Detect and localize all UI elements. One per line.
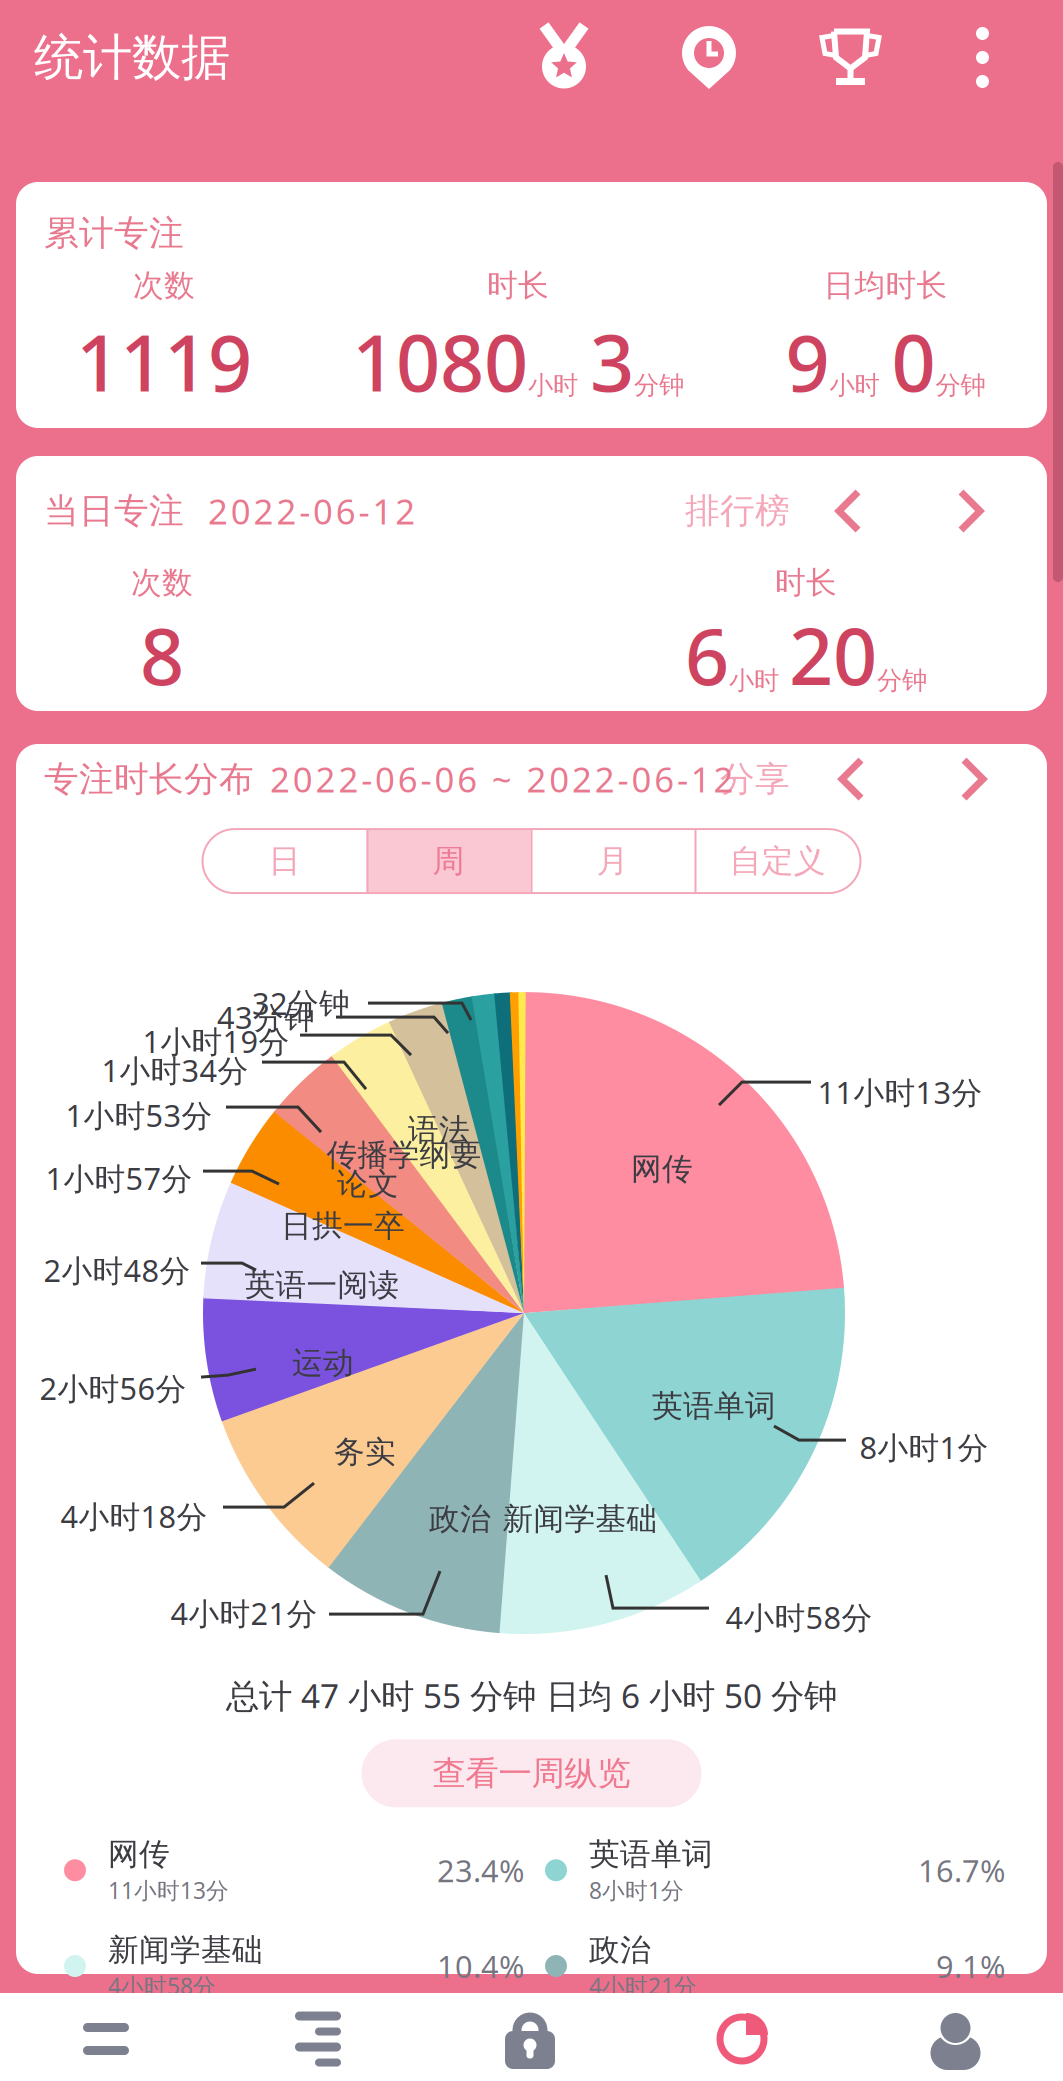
button[interactable]: 分享 <box>720 758 790 800</box>
staticText: 分钟 <box>877 665 927 696</box>
staticText: 2小时56分 <box>39 1368 186 1408</box>
staticText: 政治 <box>589 1931 651 1969</box>
button[interactable]: 日 <box>202 829 366 893</box>
button[interactable]: 自定义 <box>694 829 860 893</box>
staticText: 20 <box>789 603 877 706</box>
staticText: 传播学纲要 <box>326 1136 481 1174</box>
staticText: 分钟 <box>935 370 985 401</box>
staticText: 语法 <box>408 1111 470 1149</box>
staticText: 6 <box>685 603 729 706</box>
button[interactable]: 月 <box>530 829 694 893</box>
staticText: 11小时13分 <box>108 1875 229 1905</box>
button[interactable]: Timeline <box>0 1993 212 2081</box>
button[interactable]: 新闻学基础 <box>64 1931 524 2001</box>
staticText: 8小时1分 <box>859 1427 988 1467</box>
button[interactable]: Previous day <box>831 488 865 534</box>
button[interactable]: 网传 <box>64 1835 524 1905</box>
staticText: 8小时1分 <box>589 1875 684 1905</box>
staticText: 43分钟 <box>217 997 315 1037</box>
staticText: 2小时48分 <box>43 1250 190 1290</box>
button[interactable]: Achievements <box>537 25 591 89</box>
staticText: 3 <box>590 310 634 413</box>
staticText: 8 <box>140 603 184 706</box>
staticText: 0 <box>891 310 935 413</box>
staticText: 4小时21分 <box>589 1971 697 2001</box>
staticText: 9.1% <box>936 1946 1005 1986</box>
button[interactable]: Next week <box>956 756 990 802</box>
staticText: 小时 <box>528 370 578 401</box>
staticText: 论文 <box>337 1165 399 1203</box>
staticText: 1小时53分 <box>65 1095 212 1135</box>
staticText: 统计数据 <box>34 27 230 88</box>
button[interactable]: 政治 <box>545 1931 1005 2001</box>
button[interactable]: Profile <box>848 1993 1063 2081</box>
staticText: 小时 <box>729 665 779 696</box>
staticText: 次数 <box>131 564 193 602</box>
button[interactable]: Previous week <box>834 756 868 802</box>
staticText: 英语单词 <box>589 1835 713 1873</box>
staticText: 16.7% <box>918 1850 1005 1891</box>
button[interactable]: Leaderboard <box>819 27 882 87</box>
staticText: 1小时34分 <box>101 1050 248 1090</box>
staticText: 总计 47 小时 55 分钟 日均 6 小时 50 分钟 <box>226 1673 837 1717</box>
staticText: 专注时长分布 <box>44 758 254 800</box>
staticText: 4小时21分 <box>170 1593 317 1633</box>
staticText: 务实 <box>334 1433 396 1471</box>
staticText: 1080 <box>352 310 528 413</box>
staticText: 网传 <box>108 1835 170 1873</box>
button[interactable]: Next day <box>953 488 987 534</box>
staticText: 10.4% <box>437 1946 524 1986</box>
staticText: 小时 <box>829 370 879 401</box>
staticText: 2022-06-06 ~ 2022-06-12 <box>270 756 734 802</box>
staticText: 时长 <box>487 267 549 304</box>
staticText: 4小时58分 <box>108 1971 216 2001</box>
button[interactable]: Tasks <box>212 1993 424 2081</box>
staticText: 分钟 <box>634 370 684 401</box>
staticText: 1小时19分 <box>142 1021 289 1061</box>
staticText: 分享 <box>720 758 790 800</box>
button[interactable]: History <box>682 26 736 89</box>
staticText: 政治 <box>429 1500 491 1538</box>
button[interactable]: Focus lock <box>424 1993 636 2081</box>
button[interactable]: 排行榜 <box>685 490 790 532</box>
staticText: 新闻学基础 <box>108 1931 263 1969</box>
staticText: 日拱一卒 <box>281 1207 405 1245</box>
staticText: 当日专注 <box>44 490 184 532</box>
staticText: 自定义 <box>729 841 825 881</box>
staticText: 2022-06-12 <box>208 488 415 534</box>
staticText: 32分钟 <box>252 983 350 1023</box>
staticText: 次数 <box>133 267 195 304</box>
staticText: 查看一周纵览 <box>432 1753 630 1794</box>
staticText: 时长 <box>775 564 837 602</box>
staticText: 英语单词 <box>652 1387 776 1425</box>
staticText: 4小时18分 <box>60 1496 207 1536</box>
staticText: 周 <box>432 841 464 881</box>
staticText: 1119 <box>76 310 252 413</box>
button[interactable]: Statistics <box>636 1993 848 2081</box>
button[interactable]: 英语单词 <box>545 1835 1005 1905</box>
button[interactable]: More options <box>975 27 990 88</box>
staticText: 新闻学基础 <box>502 1500 657 1538</box>
staticText: 11小时13分 <box>817 1072 982 1112</box>
staticText: 网传 <box>631 1150 693 1188</box>
staticText: 英语一阅读 <box>244 1266 399 1304</box>
staticText: 日均时长 <box>823 267 947 304</box>
staticText: 9 <box>785 310 829 413</box>
staticText: 运动 <box>292 1344 354 1382</box>
staticText: 1小时57分 <box>45 1158 192 1198</box>
staticText: 23.4% <box>437 1850 524 1891</box>
staticText: 日 <box>268 841 300 881</box>
staticText: 4小时58分 <box>725 1597 872 1637</box>
staticText: 月 <box>596 841 628 881</box>
button[interactable]: 周 <box>366 829 530 893</box>
staticText: 累计专注 <box>44 212 184 255</box>
button[interactable]: 查看一周纵览 <box>361 1739 701 1807</box>
staticText: 排行榜 <box>685 490 790 532</box>
